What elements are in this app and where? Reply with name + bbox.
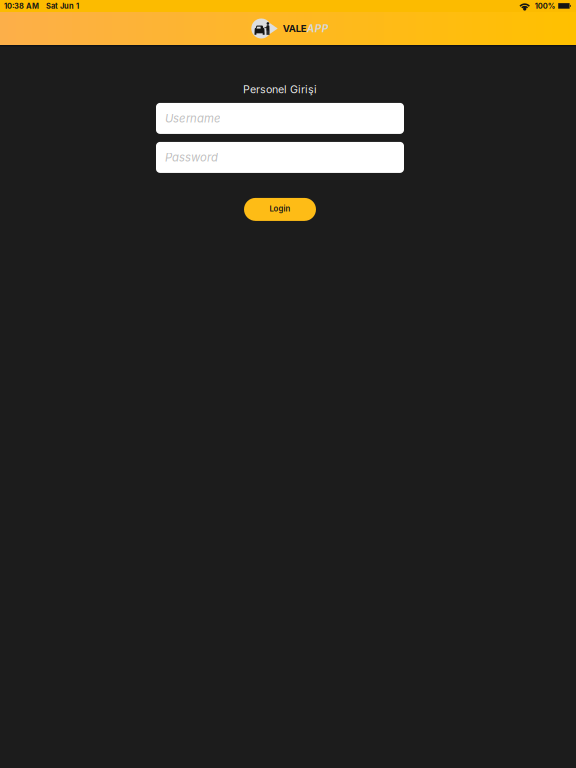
staticText: Sat Jun 1 bbox=[46, 1, 79, 10]
button[interactable]: Password bbox=[156, 142, 404, 173]
staticText: Login bbox=[269, 204, 290, 213]
staticText: 10:38 AM bbox=[4, 1, 39, 10]
button[interactable]: Login bbox=[244, 198, 316, 221]
staticText: APP bbox=[307, 22, 329, 35]
staticText: Password bbox=[165, 151, 218, 164]
staticText: Personel Girişi bbox=[243, 83, 317, 96]
staticText: Username bbox=[165, 112, 221, 125]
button[interactable]: Username bbox=[156, 103, 404, 134]
staticText: VALE bbox=[283, 23, 307, 34]
staticText: 100% bbox=[535, 1, 556, 10]
